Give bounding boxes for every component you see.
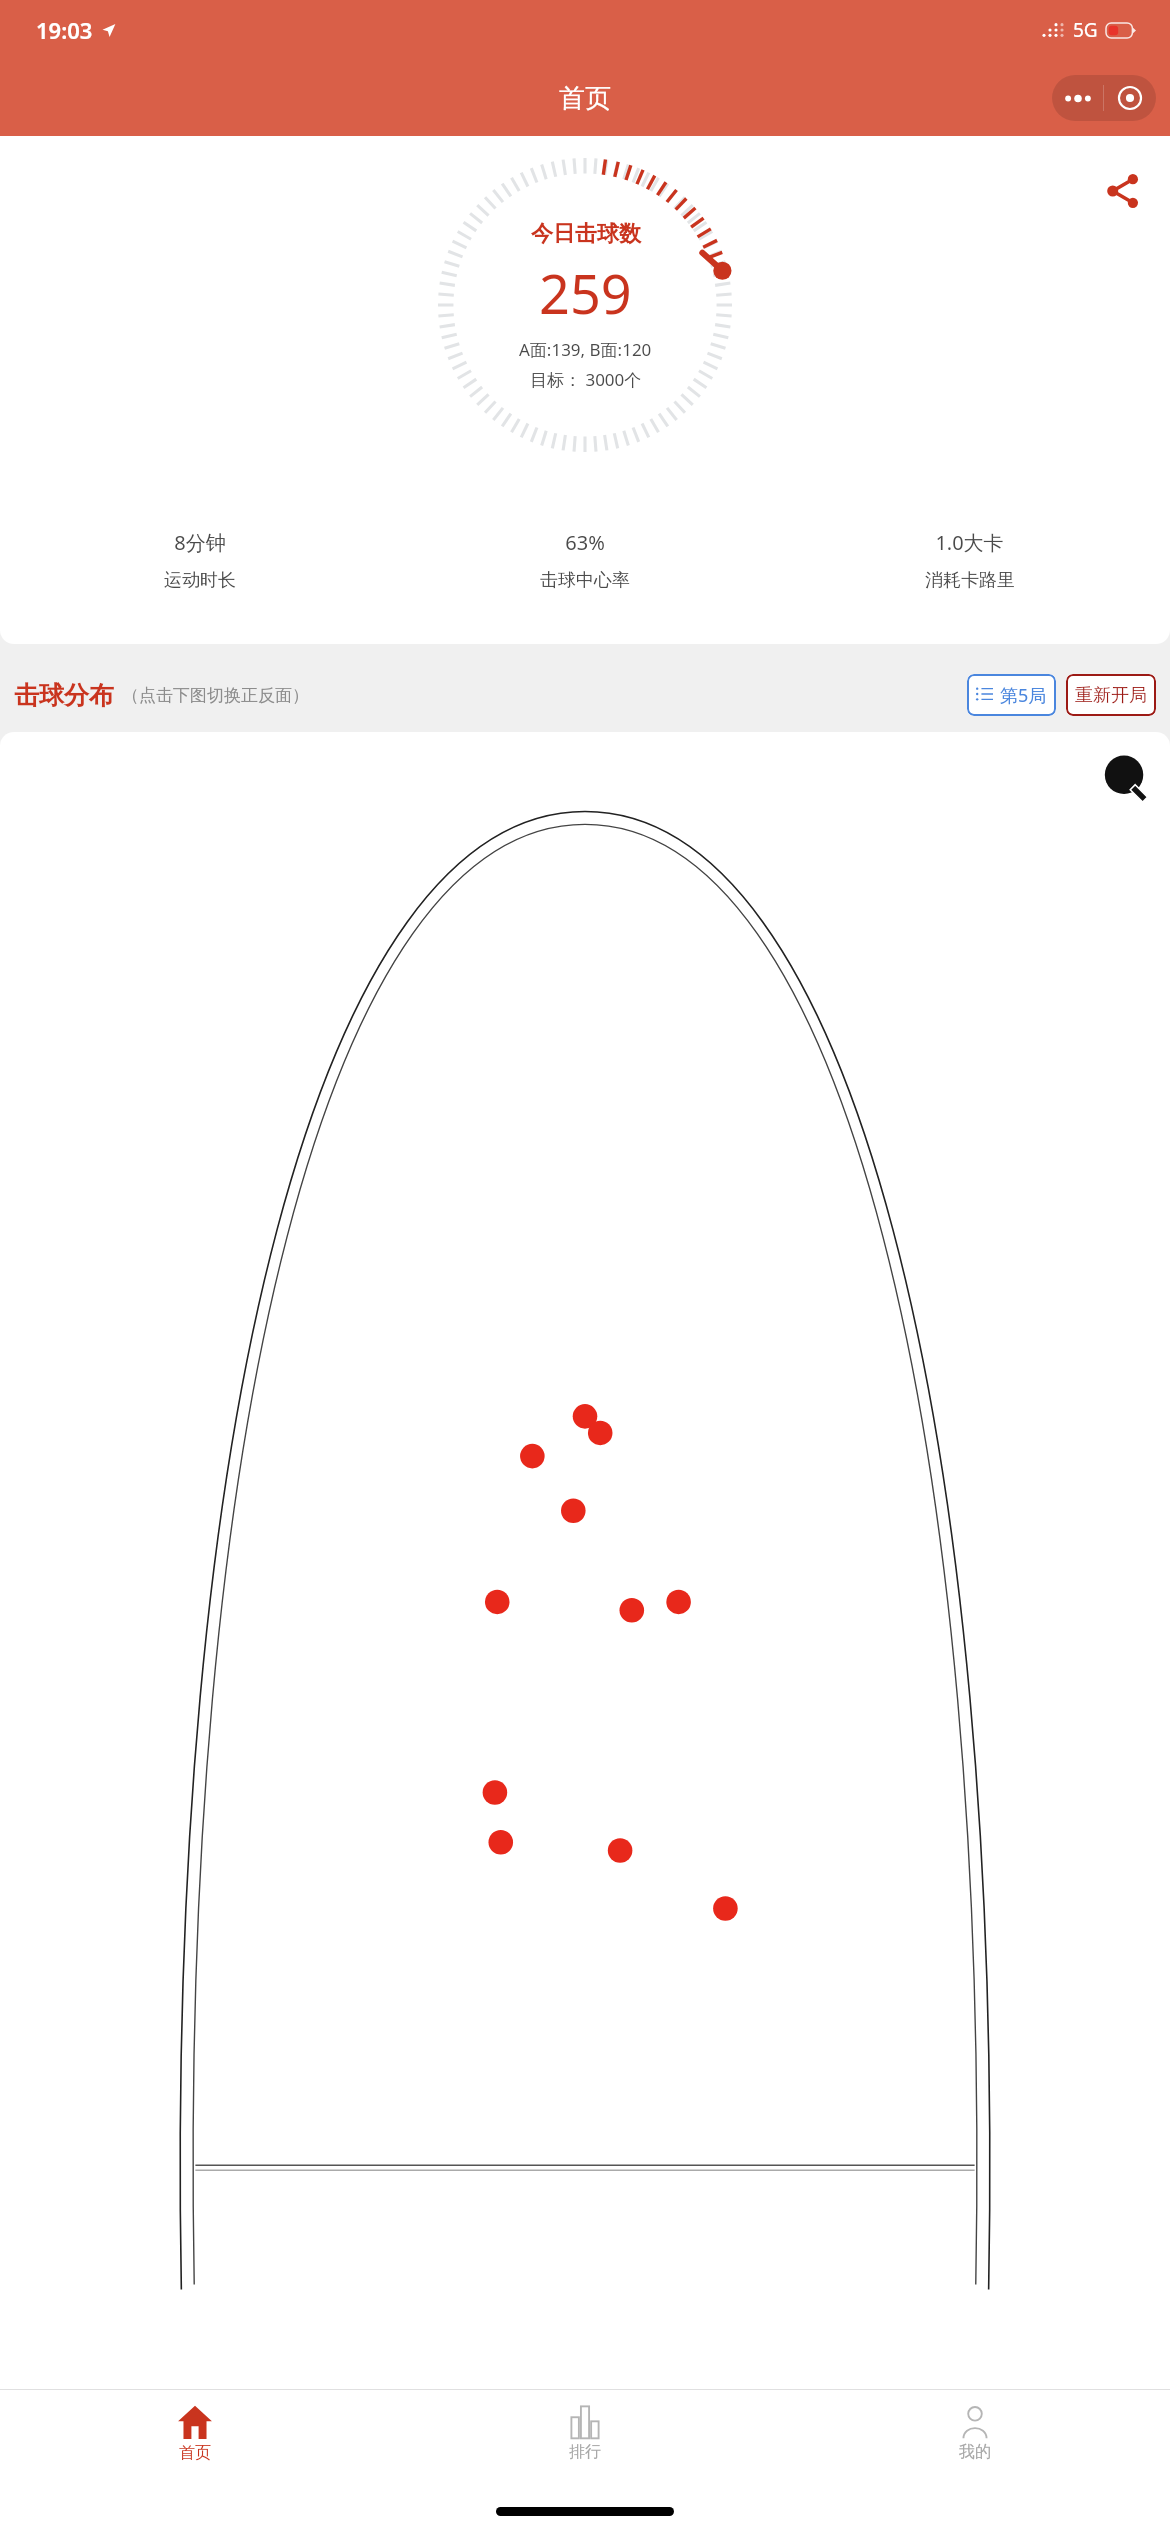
staticText: 排行 xyxy=(569,2442,601,2462)
button[interactable]: 排行 xyxy=(390,2390,780,2476)
button[interactable]: 更多 菜单 xyxy=(1052,75,1156,121)
staticText: 第5局 xyxy=(1000,683,1047,708)
staticText: 击球中心率 xyxy=(540,569,630,592)
staticText: 今日击球数 xyxy=(531,220,641,248)
staticText: 重新开局 xyxy=(1075,684,1147,707)
button[interactable]: 我的 xyxy=(780,2390,1170,2476)
button[interactable]: 切换正反面 xyxy=(1098,750,1160,812)
staticText: 击球分布 xyxy=(14,680,114,711)
button[interactable]: 首页 xyxy=(0,2390,390,2476)
button[interactable]: 63% xyxy=(392,529,777,592)
button[interactable]: 8分钟 xyxy=(8,529,392,592)
button[interactable]: 重新开局 xyxy=(1066,674,1156,716)
staticText: 259 xyxy=(539,256,632,330)
staticText: 我的 xyxy=(959,2442,991,2462)
button[interactable]: 分享 xyxy=(1100,168,1146,214)
staticText: A面:139, B面:120 xyxy=(519,338,652,361)
staticText: 8分钟 xyxy=(174,529,226,556)
button[interactable]: 1.0大卡 xyxy=(777,529,1162,592)
staticText: 运动时长 xyxy=(164,569,236,592)
staticText: 5G xyxy=(1073,17,1098,43)
button[interactable]: 第5局 xyxy=(967,674,1056,716)
staticText: 首页 xyxy=(179,2443,211,2463)
staticText: 消耗卡路里 xyxy=(925,569,1015,592)
staticText: 19:03 xyxy=(36,15,93,45)
staticText: 目标： 3000个 xyxy=(530,368,642,391)
staticText: 1.0大卡 xyxy=(935,529,1004,556)
staticText: （点击下图切换正反面） xyxy=(122,685,309,706)
staticText: 63% xyxy=(565,529,605,556)
staticText: 首页 xyxy=(559,82,611,115)
